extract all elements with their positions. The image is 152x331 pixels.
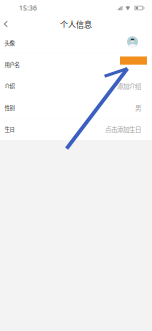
staticText: 性别 <box>5 104 15 111</box>
staticText: 15:36 <box>19 4 37 12</box>
staticText: 个人信息 <box>60 18 92 30</box>
staticText: 男 <box>135 103 141 112</box>
button[interactable]: 性别 <box>0 97 152 118</box>
button[interactable]: 用户名 <box>0 54 152 75</box>
button[interactable]: 生日 <box>0 118 152 140</box>
staticText: 添加介绍 <box>117 81 141 91</box>
staticText: 头像 <box>5 39 15 47</box>
button[interactable]: Back <box>0 16 12 32</box>
button[interactable]: 头像 <box>0 32 152 54</box>
staticText: 用户名 <box>5 60 20 68</box>
staticText: 生日 <box>5 125 15 133</box>
button[interactable]: 介绍 <box>0 75 152 97</box>
staticText: 点击添加生日 <box>105 124 141 134</box>
staticText: 介绍 <box>5 82 15 90</box>
